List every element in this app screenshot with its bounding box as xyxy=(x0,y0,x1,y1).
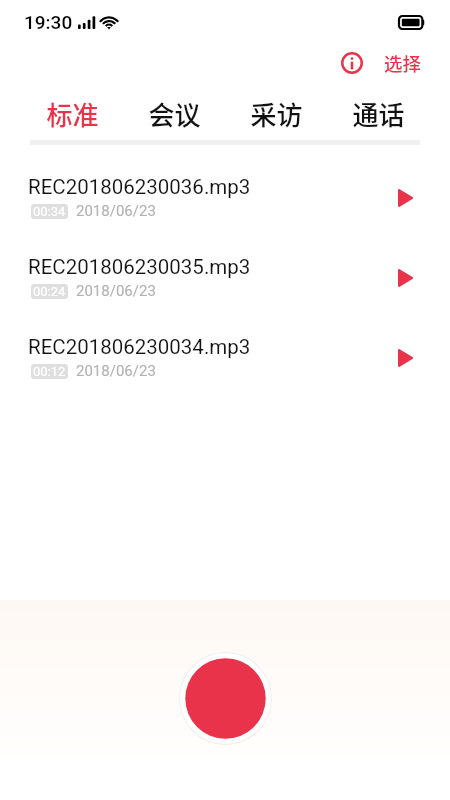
staticText: 采访 xyxy=(250,95,303,133)
button[interactable]: 选择 xyxy=(382,46,424,81)
staticText: 00:24 xyxy=(33,284,66,299)
button[interactable]: Info xyxy=(335,46,369,80)
button[interactable]: Record xyxy=(179,652,272,745)
staticText: REC201806230035.mp3 xyxy=(28,255,251,279)
staticText: 2018/06/23 xyxy=(76,362,156,380)
button[interactable]: Play xyxy=(386,339,424,377)
button[interactable]: 会议 xyxy=(123,88,225,140)
staticText: 会议 xyxy=(148,95,201,133)
staticText: 00:34 xyxy=(33,204,66,219)
button[interactable]: 通话 xyxy=(327,88,429,140)
staticText: 00:12 xyxy=(33,364,66,379)
button[interactable]: REC201806230036.mp3 xyxy=(0,155,450,235)
staticText: REC201806230036.mp3 xyxy=(28,175,251,199)
button[interactable]: 标准 xyxy=(21,88,123,140)
staticText: 2018/06/23 xyxy=(76,202,156,220)
staticText: 选择 xyxy=(384,50,422,77)
button[interactable]: 采访 xyxy=(225,88,327,140)
button[interactable]: Play xyxy=(386,259,424,297)
button[interactable]: REC201806230035.mp3 xyxy=(0,235,450,315)
staticText: 通话 xyxy=(352,95,405,133)
staticText: REC201806230034.mp3 xyxy=(28,335,251,359)
button[interactable]: REC201806230034.mp3 xyxy=(0,315,450,395)
staticText: 标准 xyxy=(46,95,99,133)
button[interactable]: Play xyxy=(386,179,424,217)
staticText: 2018/06/23 xyxy=(76,282,156,300)
staticText: 19:30 xyxy=(24,11,73,33)
